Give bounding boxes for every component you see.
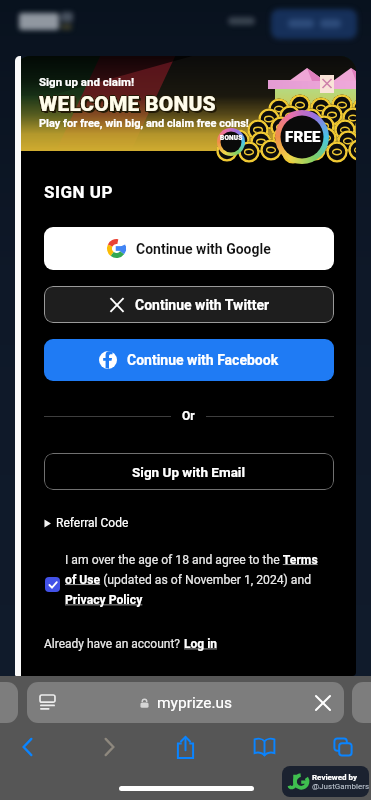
button[interactable]: Back bbox=[10, 730, 44, 764]
button[interactable]: myprize.us bbox=[27, 682, 344, 723]
button[interactable]: Continue with Twitter bbox=[44, 286, 334, 323]
staticText: Play for free, win big, and claim free c… bbox=[39, 117, 249, 130]
button[interactable]: I agree to the Terms of Use bbox=[45, 577, 60, 592]
staticText: WELCOME BONUS bbox=[40, 92, 217, 117]
button[interactable]: Reviewed by bbox=[282, 766, 369, 797]
staticText: Continue with Twitter bbox=[135, 297, 270, 313]
button[interactable]: Sign Up with Email bbox=[44, 453, 334, 490]
staticText: Continue with Facebook bbox=[127, 352, 279, 368]
button[interactable]: Forward bbox=[92, 730, 126, 764]
staticText: WELCOME BONUS bbox=[40, 93, 217, 118]
staticText: Sign Up with Email bbox=[132, 464, 246, 480]
button[interactable]: Stop loading bbox=[311, 691, 335, 715]
staticText: WELCOME BONUS bbox=[39, 92, 216, 117]
staticText: FREE bbox=[285, 128, 321, 146]
staticText: Sign up and claim! bbox=[39, 75, 135, 88]
staticText: Reviewed by bbox=[312, 773, 358, 782]
staticText: I am over the age of 18 and agree to the… bbox=[65, 553, 324, 607]
staticText: myprize.us bbox=[157, 694, 233, 712]
button[interactable]: Log in bbox=[184, 637, 218, 651]
button[interactable]: Share bbox=[168, 730, 202, 764]
staticText: Log in bbox=[184, 637, 218, 651]
button[interactable]: Referral Code bbox=[43, 515, 129, 531]
staticText: Referral Code bbox=[56, 516, 129, 530]
button[interactable]: Tabs bbox=[326, 730, 360, 764]
staticText: WELCOME BONUS bbox=[38, 92, 215, 117]
staticText: WELCOME BONUS bbox=[39, 93, 216, 118]
staticText: @JustGamblers bbox=[312, 782, 369, 791]
button[interactable]: Bookmarks bbox=[247, 730, 281, 764]
staticText: WELCOME BONUS bbox=[41, 94, 218, 119]
button[interactable]: Continue with Google bbox=[44, 227, 334, 270]
staticText: WELCOME BONUS bbox=[38, 93, 215, 118]
button[interactable]: Page settings bbox=[37, 692, 58, 713]
staticText: Or bbox=[182, 409, 195, 423]
staticText: SIGN UP bbox=[44, 182, 113, 202]
button[interactable]: Continue with Facebook bbox=[44, 339, 334, 381]
staticText: Continue with Google bbox=[136, 241, 271, 257]
staticText: BONUS bbox=[220, 134, 243, 142]
staticText: WELCOME BONUS bbox=[39, 91, 216, 116]
staticText: Already have an account? bbox=[44, 637, 184, 651]
